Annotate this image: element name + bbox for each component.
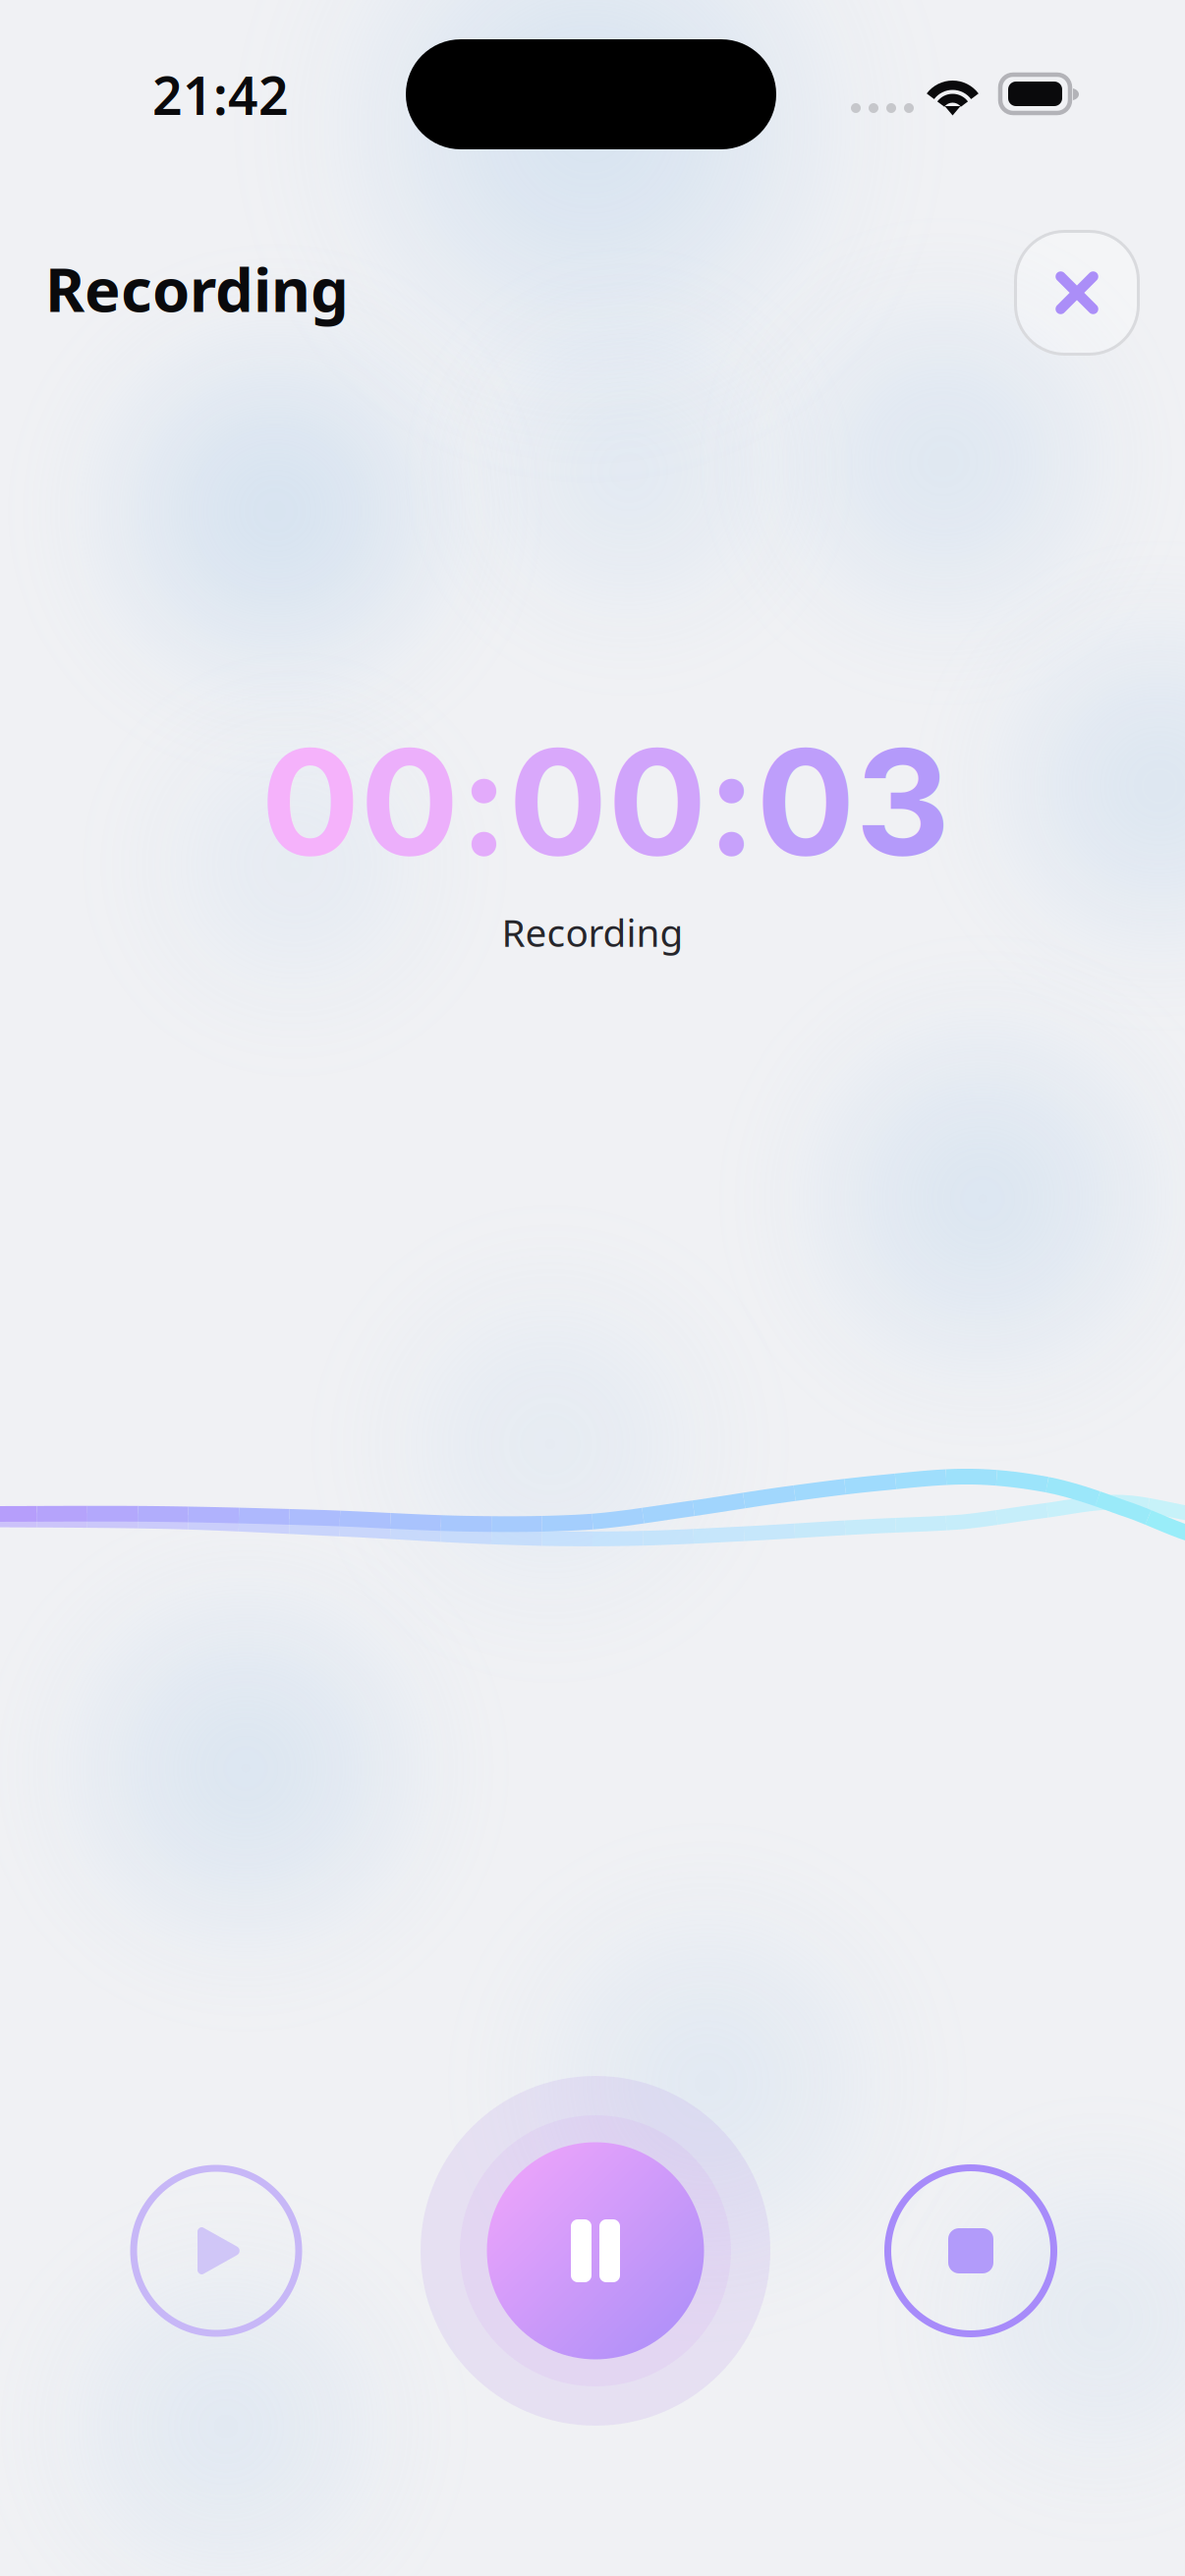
- button[interactable]: Stop: [879, 2159, 1062, 2342]
- staticText: 0: [756, 713, 855, 891]
- staticText: 0: [508, 713, 608, 891]
- staticText: 0: [360, 713, 459, 891]
- staticText: 3: [855, 713, 950, 891]
- staticText: 0: [608, 713, 707, 891]
- staticText: :: [459, 713, 508, 891]
- staticText: 21:42: [152, 60, 289, 129]
- button[interactable]: Close: [1009, 225, 1145, 361]
- staticText: Recording: [502, 907, 683, 957]
- button[interactable]: Pause: [409, 2064, 782, 2437]
- staticText: 0: [261, 713, 360, 891]
- button[interactable]: Play: [125, 2159, 308, 2342]
- staticText: :: [707, 713, 756, 891]
- staticText: Recording: [45, 249, 349, 329]
